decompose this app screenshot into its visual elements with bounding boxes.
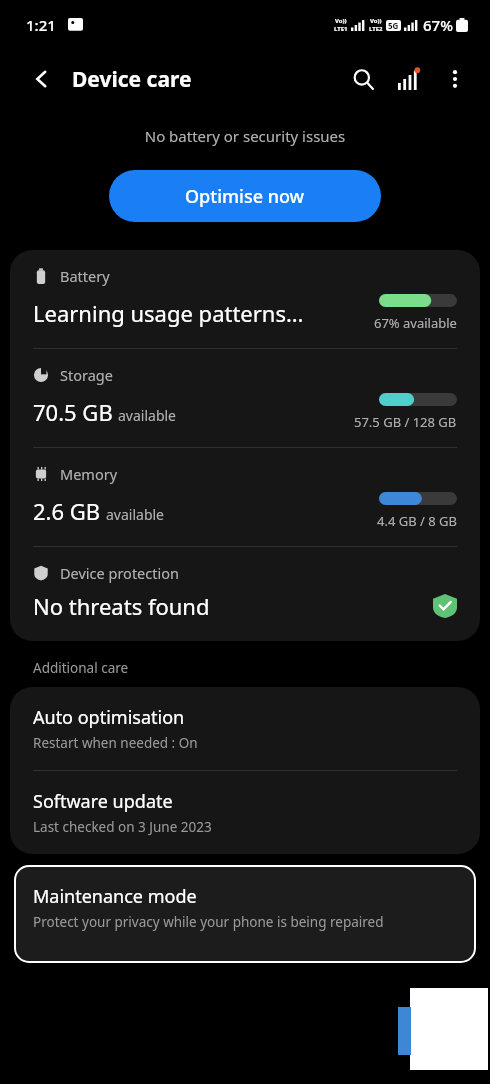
staticText: No battery or security issues (0, 126, 490, 146)
staticText: Vo)) (370, 17, 382, 25)
staticText: No threats found (33, 591, 433, 621)
staticText: 67% available (374, 314, 457, 332)
staticText: Software update (33, 789, 173, 814)
button[interactable]: Software update (10, 771, 480, 854)
button[interactable]: Maintenance mode (15, 866, 475, 962)
staticText: Learning usage patterns… (33, 298, 304, 328)
staticText: Additional care (33, 659, 129, 677)
staticText: Device protection (60, 563, 179, 583)
button[interactable]: Battery (10, 250, 480, 348)
staticText: 67% (423, 15, 453, 35)
staticText: Restart when needed : On (33, 734, 198, 752)
staticText: LTE1 (334, 25, 348, 33)
button[interactable]: Optimise now (109, 170, 381, 222)
staticText: available (106, 505, 165, 524)
staticText: Battery (60, 266, 110, 286)
staticText: 57.5 GB / 128 GB (354, 413, 457, 431)
staticText: 2.6 GB (33, 496, 101, 526)
staticText: Vo)) (335, 17, 347, 25)
staticText: 5G (388, 20, 399, 31)
staticText: 4.4 GB / 8 GB (377, 512, 457, 530)
staticText: Memory (60, 464, 118, 484)
button[interactable]: Storage (10, 349, 480, 447)
staticText: Last checked on 3 June 2023 (33, 818, 212, 836)
staticText: Optimise now (185, 184, 305, 209)
staticText: LTE2 (369, 25, 383, 33)
button[interactable]: Memory (10, 448, 480, 546)
staticText: Maintenance mode (33, 884, 197, 909)
button[interactable]: Back (20, 57, 64, 101)
button[interactable]: More options (432, 56, 478, 102)
button[interactable]: Search (340, 56, 386, 102)
staticText: Device care (72, 65, 192, 94)
staticText: 1:21 (26, 15, 56, 35)
staticText: Protect your privacy while your phone is… (33, 913, 384, 931)
button[interactable]: Usage statistics (386, 56, 432, 102)
staticText: Auto optimisation (33, 705, 185, 730)
staticText: 70.5 GB (33, 397, 113, 427)
button[interactable]: Auto optimisation (10, 687, 480, 770)
button[interactable]: Device protection (10, 547, 480, 641)
staticText: Storage (60, 365, 113, 385)
staticText: available (118, 406, 177, 425)
